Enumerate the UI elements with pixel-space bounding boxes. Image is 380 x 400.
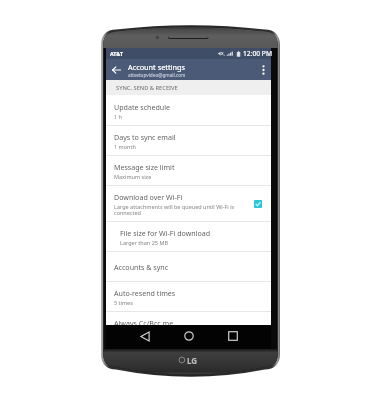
staticText: Download over Wi-Fi <box>114 192 183 202</box>
button[interactable]: Download over Wi-Fi <box>106 186 271 222</box>
button[interactable]: Home <box>167 325 211 349</box>
staticText: SYNC, SEND & RECEIVE <box>116 84 178 92</box>
staticText: Maximum size <box>114 173 152 180</box>
staticText: Days to sync email <box>114 132 176 142</box>
staticText: Accounts & sync <box>114 262 169 272</box>
staticText: Update schedule <box>114 102 171 112</box>
button[interactable]: File size for Wi-Fi download <box>106 222 271 252</box>
button[interactable]: Always Cc/Bcc me <box>106 312 271 342</box>
staticText: 1 month <box>114 143 136 150</box>
staticText: 1 h <box>114 113 122 120</box>
button[interactable]: Auto-resend times <box>106 282 271 312</box>
staticText: Message size limit <box>114 162 175 172</box>
button[interactable]: Days to sync email <box>106 126 271 156</box>
button[interactable]: Message size limit <box>106 156 271 186</box>
button[interactable]: Accounts & sync <box>106 252 271 282</box>
staticText: LG <box>187 355 198 366</box>
staticText: AT&T <box>110 50 124 57</box>
staticText: attsetupvideo@gmail.com <box>128 72 186 78</box>
button[interactable]: Update schedule <box>106 95 271 126</box>
staticText: 5 times <box>114 299 133 306</box>
button[interactable]: Back <box>123 325 167 349</box>
staticText: Large attachments will be queued until W… <box>114 203 235 217</box>
staticText: Account settings <box>128 62 185 72</box>
staticText: 12:00 PM <box>243 49 272 58</box>
staticText: Larger than 25 MB <box>120 239 168 246</box>
staticText: Auto-resend times <box>114 288 176 298</box>
staticText: File size for Wi-Fi download <box>120 228 211 238</box>
staticText: Always Cc/Bcc me <box>114 318 174 328</box>
button[interactable]: Recent apps <box>211 325 255 349</box>
button[interactable]: More options <box>255 59 271 80</box>
button[interactable]: Navigate up <box>106 59 127 80</box>
